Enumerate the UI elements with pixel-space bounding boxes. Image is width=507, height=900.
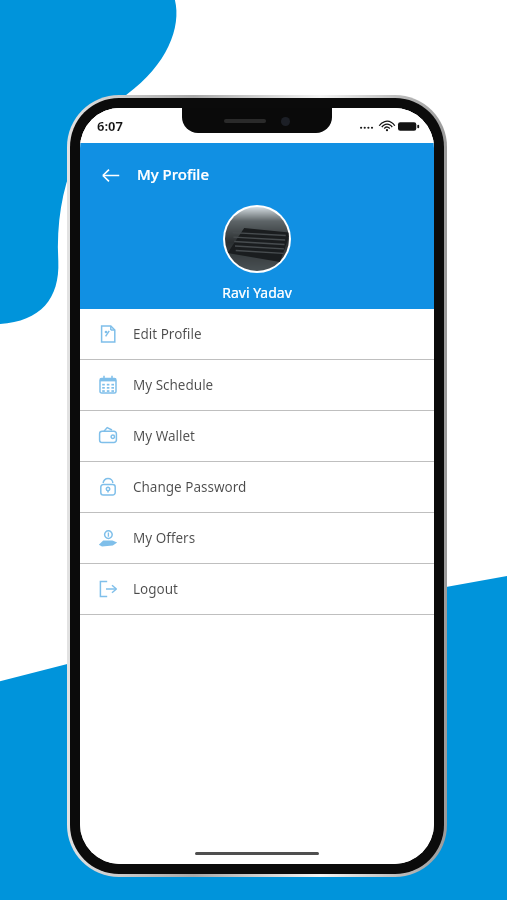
staticText: ravi2021@mailinator.com	[80, 305, 434, 320]
staticText: 6:07	[97, 117, 123, 135]
button[interactable]: Logout	[80, 564, 434, 614]
button[interactable]: Change Password	[80, 462, 434, 512]
button[interactable]: My Wallet	[80, 411, 434, 461]
button[interactable]: My Schedule	[80, 360, 434, 410]
staticText: My Profile	[137, 164, 210, 184]
staticText: Ravi Yadav	[80, 283, 434, 302]
staticText: My Schedule	[133, 376, 214, 394]
staticText: Logout	[133, 580, 178, 598]
button[interactable]: Back	[92, 157, 128, 193]
staticText: My Wallet	[133, 427, 195, 445]
staticText: Edit Profile	[133, 325, 202, 343]
staticText: My Offers	[133, 529, 196, 547]
button[interactable]: Edit Profile	[80, 309, 434, 359]
button[interactable]: Profile picture	[225, 207, 289, 271]
staticText: Change Password	[133, 478, 247, 496]
button[interactable]: My Offers	[80, 513, 434, 563]
